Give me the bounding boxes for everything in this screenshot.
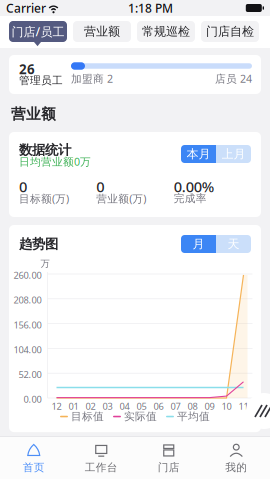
staticText: 05 [136, 400, 146, 412]
staticText: 12 [51, 400, 61, 412]
staticText: 万 [40, 258, 49, 269]
staticText: 加盟商 2 [71, 71, 113, 86]
staticText: 10 [221, 400, 231, 412]
staticText: 工作台 [85, 461, 118, 474]
staticText: 208.00 [13, 294, 41, 306]
button[interactable]: 门店自检 [201, 21, 259, 42]
staticText: 店员 24 [215, 71, 252, 86]
staticText: 管理员工 [19, 74, 63, 87]
button[interactable]: 月 [181, 235, 216, 253]
button[interactable]: 我的 [202, 437, 270, 479]
staticText: 09 [204, 400, 214, 412]
button[interactable]: 工作台 [67, 437, 135, 479]
staticText: 06 [153, 400, 163, 412]
button[interactable]: 上月 [216, 145, 251, 163]
button[interactable]: 营业额 [73, 21, 131, 42]
staticText: 营业额 [11, 105, 56, 123]
staticText: 156.00 [13, 319, 41, 331]
button[interactable]: 门店 [135, 437, 202, 479]
staticText: 0 [19, 177, 27, 196]
staticText: 0.00 [23, 393, 41, 405]
staticText: 门店 [158, 461, 180, 474]
staticText: 本月 [186, 147, 210, 161]
button[interactable]: 展开图表 [246, 393, 270, 429]
staticText: Carrier [6, 0, 46, 16]
staticText: 1:18 PM [128, 0, 173, 16]
staticText: 门店/员工 [11, 23, 64, 39]
staticText: 26 [19, 60, 35, 78]
staticText: 11 [238, 400, 248, 412]
button[interactable]: 首页 [0, 437, 67, 479]
staticText: 01 [68, 400, 78, 412]
staticText: 门店自检 [206, 24, 254, 39]
staticText: 实际值 [124, 410, 157, 423]
staticText: 趋势图 [19, 236, 58, 252]
staticText: 目标额(万) [19, 191, 69, 206]
button[interactable]: 本月 [181, 145, 216, 163]
staticText: 天 [227, 237, 239, 251]
staticText: 数据统计 [19, 142, 71, 158]
staticText: 04 [119, 400, 129, 412]
staticText: 目标值 [71, 410, 104, 423]
staticText: 营业额 [84, 24, 120, 39]
staticText: 营业额(万) [96, 191, 146, 206]
staticText: 03 [102, 400, 112, 412]
staticText: 07 [170, 400, 180, 412]
staticText: 平均值 [177, 410, 210, 423]
button[interactable]: 天 [216, 235, 251, 253]
staticText: 104.00 [13, 343, 41, 356]
staticText: 月 [192, 237, 204, 251]
staticText: 我的 [225, 461, 247, 474]
staticText: 260.00 [13, 269, 41, 281]
button[interactable]: 门店/员工 [9, 21, 67, 42]
staticText: 首页 [23, 461, 45, 474]
staticText: 日均营业额0万 [19, 154, 91, 169]
staticText: 02 [85, 400, 95, 412]
staticText: 52.00 [18, 368, 41, 381]
staticText: 08 [187, 400, 197, 412]
button[interactable]: 常规巡检 [137, 21, 195, 42]
staticText: 上月 [221, 147, 245, 161]
staticText: 常规巡检 [142, 24, 190, 39]
staticText: 0.00% [174, 177, 214, 196]
staticText: 完成率 [174, 192, 207, 205]
staticText: 0 [96, 177, 104, 196]
